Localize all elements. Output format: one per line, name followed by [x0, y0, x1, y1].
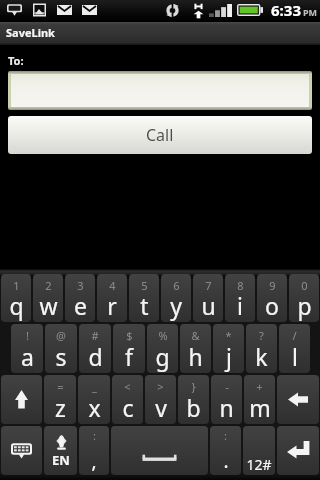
button[interactable]: ! [11, 324, 43, 373]
staticText: o [265, 290, 279, 321]
staticText: } [191, 379, 196, 394]
staticText: e [74, 290, 87, 321]
staticText: > [157, 379, 164, 394]
staticText: ? [259, 328, 264, 343]
staticText: # [91, 328, 99, 343]
button[interactable]: 4 [97, 274, 127, 322]
staticText: h [188, 341, 203, 372]
staticText: = [57, 379, 64, 394]
staticText: 12# [246, 455, 272, 474]
staticText: v [155, 392, 167, 423]
button[interactable] [11, 74, 309, 107]
staticText: 3 [77, 278, 84, 293]
button[interactable]: 2 [33, 274, 63, 322]
staticText: SaveLink [6, 25, 55, 40]
staticText: + [256, 379, 263, 394]
staticText: j [226, 341, 232, 372]
staticText: y [170, 290, 182, 321]
staticText: / [292, 328, 297, 343]
staticText: 2 [45, 278, 52, 293]
button[interactable]: 5 [129, 274, 159, 322]
button[interactable]: $ [113, 324, 145, 373]
staticText: , [91, 448, 97, 474]
button[interactable]: # [79, 324, 111, 373]
staticText: 9 [269, 278, 276, 293]
staticText: . [223, 448, 229, 474]
button[interactable]: & [180, 324, 211, 373]
button[interactable]: 1 [1, 274, 31, 322]
staticText: 5 [141, 278, 148, 293]
staticText: PM [303, 6, 318, 18]
button[interactable]: 9 [257, 274, 287, 322]
button[interactable]: Call [8, 116, 312, 154]
button[interactable]: Space [111, 426, 208, 475]
staticText: d [88, 341, 103, 372]
button[interactable]: Voice input, English [44, 426, 77, 475]
button[interactable]: : [210, 426, 241, 475]
staticText: q [9, 290, 24, 321]
staticText: f [125, 341, 133, 372]
staticText: To: [8, 53, 24, 68]
button[interactable]: Backspace [277, 375, 319, 424]
staticText: 7 [205, 278, 212, 293]
button[interactable]: @ [45, 324, 77, 373]
staticText: u [201, 290, 216, 321]
staticText: g [155, 341, 170, 372]
staticText: EN [52, 451, 70, 469]
staticText: l [292, 341, 298, 372]
button[interactable]: < [112, 375, 143, 424]
staticText: i [237, 290, 243, 321]
staticText: 6 [173, 278, 180, 293]
button[interactable]: Enter [277, 426, 319, 475]
staticText: < [124, 379, 131, 394]
staticText: _ [92, 379, 97, 394]
button[interactable]: _ [78, 375, 110, 424]
button[interactable]: + [244, 375, 275, 424]
staticText: % [158, 328, 168, 343]
staticText: ! [26, 328, 29, 343]
staticText: x [88, 392, 101, 423]
staticText: $ [126, 328, 133, 343]
staticText: 1 [13, 278, 20, 293]
button[interactable]: 6 [161, 274, 191, 322]
staticText: p [297, 290, 312, 321]
button[interactable]: / [279, 324, 310, 373]
staticText: w [39, 290, 58, 321]
staticText: @ [56, 328, 66, 343]
staticText: s [55, 341, 67, 372]
button[interactable]: 8 [225, 274, 255, 322]
button[interactable]: Shift [1, 375, 42, 424]
staticText: & [191, 328, 200, 343]
staticText: z [55, 392, 66, 423]
staticText: 8 [237, 278, 244, 293]
button[interactable]: 12# [243, 426, 275, 475]
button[interactable]: Keyboard settings [1, 426, 42, 475]
button[interactable]: ? [246, 324, 277, 373]
staticText: b [186, 392, 201, 423]
staticText: r [107, 290, 117, 321]
button[interactable]: 0 [289, 274, 319, 322]
staticText: a [21, 341, 34, 372]
button[interactable]: 7 [193, 274, 223, 322]
button[interactable]: } [178, 375, 209, 424]
button[interactable]: : [79, 426, 109, 475]
staticText: m [249, 392, 271, 423]
staticText: * [225, 328, 232, 343]
staticText: - [225, 379, 229, 394]
staticText: n [219, 392, 234, 423]
staticText: 4 [109, 278, 116, 293]
button[interactable]: - [211, 375, 242, 424]
button[interactable]: = [44, 375, 76, 424]
button[interactable]: 3 [65, 274, 95, 322]
staticText: t [140, 290, 149, 321]
staticText: 0 [301, 278, 308, 293]
staticText: : [224, 428, 227, 443]
staticText: c [122, 392, 134, 423]
staticText: : [93, 428, 96, 443]
button[interactable]: * [213, 324, 244, 373]
staticText: Call [146, 124, 174, 146]
button[interactable]: > [145, 375, 176, 424]
staticText: 6:33 [271, 0, 301, 20]
button[interactable]: % [147, 324, 178, 373]
